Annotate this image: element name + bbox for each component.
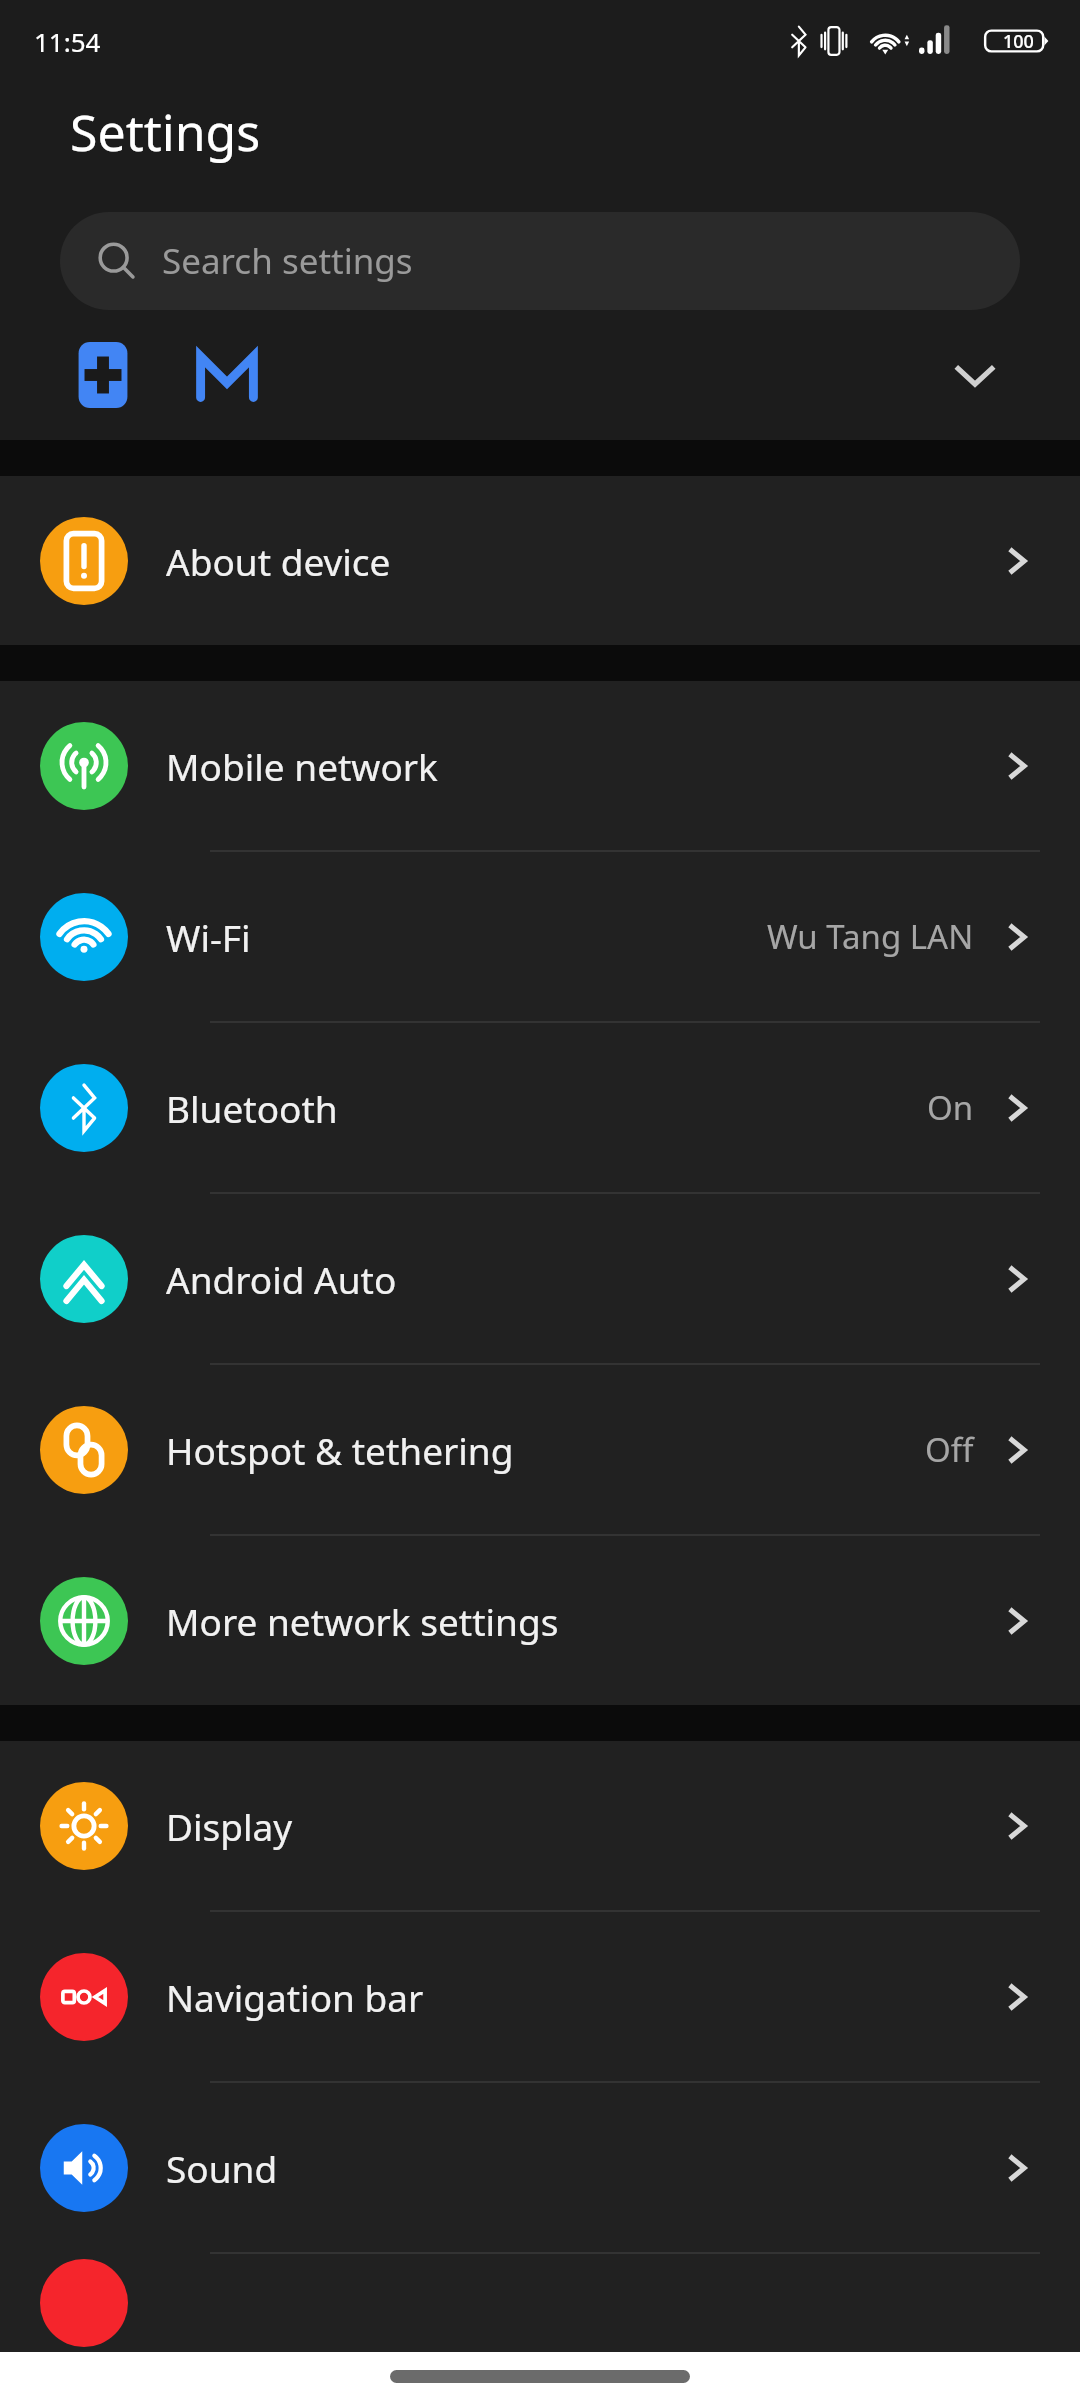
staticText: About device — [166, 536, 391, 586]
staticText: Settings — [70, 98, 261, 166]
staticText: Display — [166, 1801, 293, 1851]
staticText: 11:54 — [34, 24, 101, 59]
button[interactable]: Android Auto — [0, 1194, 1080, 1363]
staticText: Wi-Fi — [166, 912, 251, 962]
button[interactable]: Display — [0, 1741, 1080, 1910]
button[interactable]: About device — [0, 476, 1080, 645]
button[interactable]: Navigation bar — [0, 1912, 1080, 2081]
button[interactable]: Safety app — [70, 342, 136, 408]
button[interactable]: Mobile network — [0, 681, 1080, 850]
button[interactable]: More network settings — [0, 1536, 1080, 1705]
staticText: More network settings — [166, 1596, 559, 1646]
staticText: Android Auto — [166, 1254, 397, 1304]
button[interactable]: Expand — [940, 340, 1010, 410]
staticText: Navigation bar — [166, 1972, 424, 2022]
button[interactable]: Search settings — [60, 212, 1020, 310]
button[interactable]: Sound — [0, 2083, 1080, 2252]
staticText: On — [927, 1085, 974, 1130]
staticText: Mobile network — [166, 741, 438, 791]
button[interactable] — [0, 2254, 1080, 2352]
staticText: Off — [925, 1427, 974, 1472]
button[interactable]: Gmail — [194, 342, 260, 408]
staticText: Bluetooth — [166, 1083, 338, 1133]
button[interactable]: Hotspot & tethering — [0, 1365, 1080, 1534]
staticText: Wu Tang LAN — [767, 914, 974, 959]
staticText: Sound — [166, 2143, 278, 2193]
staticText: 100 — [1003, 29, 1034, 54]
staticText: Search settings — [162, 237, 413, 285]
button[interactable]: Wi-Fi — [0, 852, 1080, 1021]
button[interactable]: Bluetooth — [0, 1023, 1080, 1192]
staticText: Hotspot & tethering — [166, 1425, 514, 1475]
